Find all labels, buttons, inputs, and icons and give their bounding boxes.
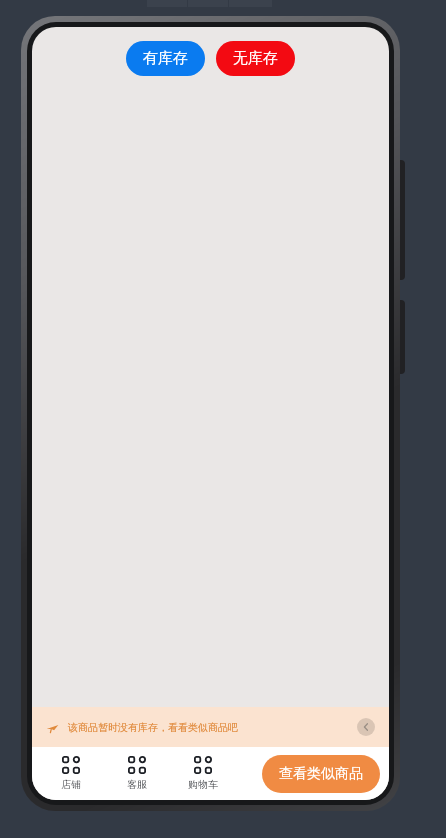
- button[interactable]: 无库存: [216, 41, 295, 76]
- button[interactable]: Collapse: [357, 718, 375, 736]
- button[interactable]: 客服: [104, 747, 170, 800]
- button[interactable]: 查看类似商品: [262, 755, 380, 793]
- button[interactable]: 购物车: [170, 747, 236, 800]
- staticText: 购物车: [188, 778, 218, 791]
- staticText: 该商品暂时没有库存，看看类似商品吧: [68, 721, 238, 734]
- staticText: 有库存: [143, 49, 188, 68]
- staticText: 客服: [127, 778, 147, 791]
- button[interactable]: 有库存: [126, 41, 205, 76]
- staticText: 无库存: [233, 49, 278, 68]
- button[interactable]: 店铺: [38, 747, 104, 800]
- staticText: 查看类似商品: [279, 765, 363, 783]
- staticText: 店铺: [61, 778, 81, 791]
